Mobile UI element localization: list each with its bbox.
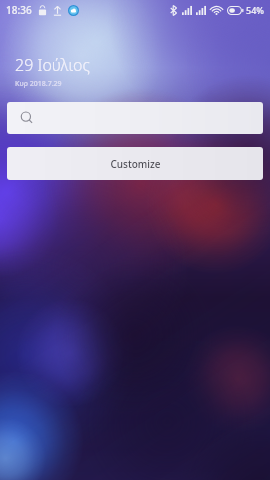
staticText: Customize — [110, 157, 161, 171]
button[interactable] — [7, 102, 263, 134]
staticText: 29 Ιούλιος — [15, 54, 90, 76]
staticText: Κυρ 2018.7.29 — [15, 79, 62, 89]
staticText: 18:36 — [6, 3, 32, 17]
staticText: 54% — [246, 4, 264, 16]
button[interactable]: Customize — [7, 147, 263, 180]
